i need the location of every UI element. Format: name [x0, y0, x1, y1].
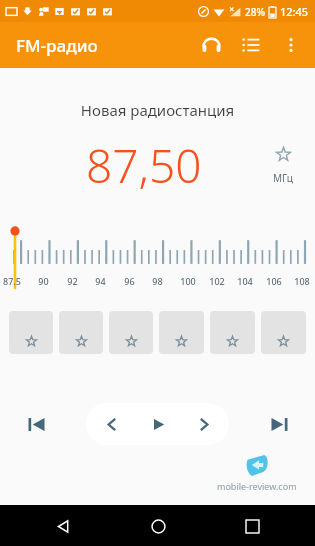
staticText: 90 [38, 275, 49, 287]
button[interactable]: Empty preset [9, 311, 53, 354]
button[interactable]: Station list [231, 25, 271, 65]
button[interactable]: Recent apps [233, 507, 271, 545]
staticText: 87,50 [86, 134, 202, 197]
staticText: МГц [273, 171, 293, 185]
button[interactable]: Empty preset [59, 311, 103, 354]
staticText: 96 [124, 275, 135, 287]
staticText: 108 [294, 275, 310, 287]
staticText: 28% [245, 5, 265, 19]
button[interactable]: Empty preset [159, 311, 204, 354]
staticText: 94 [95, 275, 106, 287]
button[interactable]: Empty preset [109, 311, 153, 354]
button[interactable]: Add to favorites [273, 147, 293, 185]
staticText: 104 [237, 275, 253, 287]
button[interactable]: Next station [257, 402, 301, 446]
button[interactable]: Back [44, 507, 82, 545]
button[interactable]: Play [138, 404, 178, 444]
staticText: 102 [209, 275, 225, 287]
button[interactable]: Seek down [92, 404, 132, 444]
staticText: 100 [180, 275, 196, 287]
staticText: Новая радиостанция [0, 100, 315, 120]
staticText: 12:45 [280, 4, 309, 19]
button[interactable]: Previous station [14, 402, 58, 446]
staticText: 98 [152, 275, 163, 287]
button[interactable]: Headphones [191, 25, 231, 65]
button[interactable]: More options [271, 25, 311, 65]
button[interactable]: Empty preset [261, 311, 306, 354]
button[interactable]: Home [139, 507, 177, 545]
staticText: mobile-review.com [217, 480, 297, 492]
staticText: 106 [266, 275, 282, 287]
button[interactable]: Empty preset [210, 311, 255, 354]
button[interactable]: Seek up [183, 404, 223, 444]
staticText: 87.5 [3, 275, 21, 287]
staticText: 92 [67, 275, 78, 287]
staticText: FM-радио [16, 34, 98, 57]
